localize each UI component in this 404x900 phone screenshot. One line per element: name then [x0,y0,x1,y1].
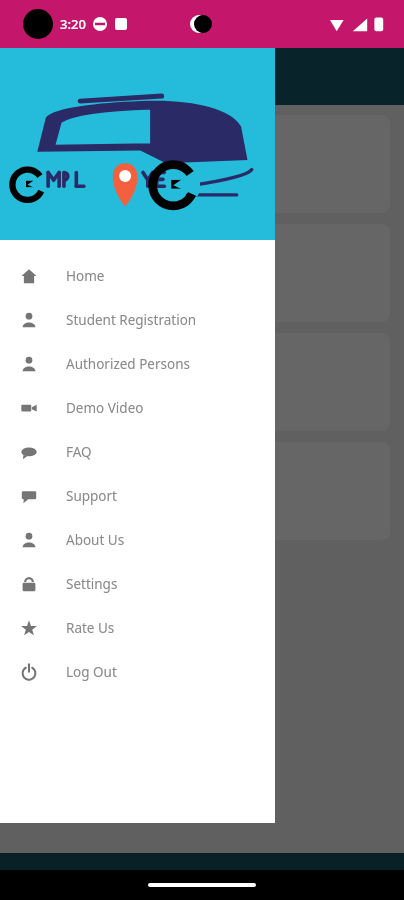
button[interactable]: Student Registration [0,298,275,342]
staticText: FAQ [66,443,92,461]
button[interactable]: Support [0,474,275,518]
button[interactable]: Demo Video [0,386,275,430]
button[interactable]: Settings [0,562,275,606]
button[interactable]: Bus Fare [14,333,390,431]
staticText: Log Out [66,663,117,681]
button[interactable]: Announcement [14,442,390,540]
button[interactable]: Log Out [0,650,275,694]
staticText: Authorized Persons [66,355,190,373]
staticText: Demo Video [66,399,144,417]
button[interactable]: Notification [14,224,390,322]
staticText: About Us [66,531,125,549]
button[interactable]: Home [0,254,275,298]
staticText: Settings [66,575,118,593]
staticText: Support [66,487,117,505]
button[interactable]: Rate Us [0,606,275,650]
staticText: Rate Us [66,619,115,637]
button[interactable]: Real Bus Tracker [14,115,390,213]
staticText: Student Registration [66,311,197,329]
staticText: 3:20 [60,15,86,33]
staticText: Home [66,267,105,285]
button[interactable]: Authorized Persons [0,342,275,386]
button[interactable]: FAQ [0,430,275,474]
staticText: Real Bus Tracker [148,175,257,194]
button[interactable]: About Us [0,518,275,562]
